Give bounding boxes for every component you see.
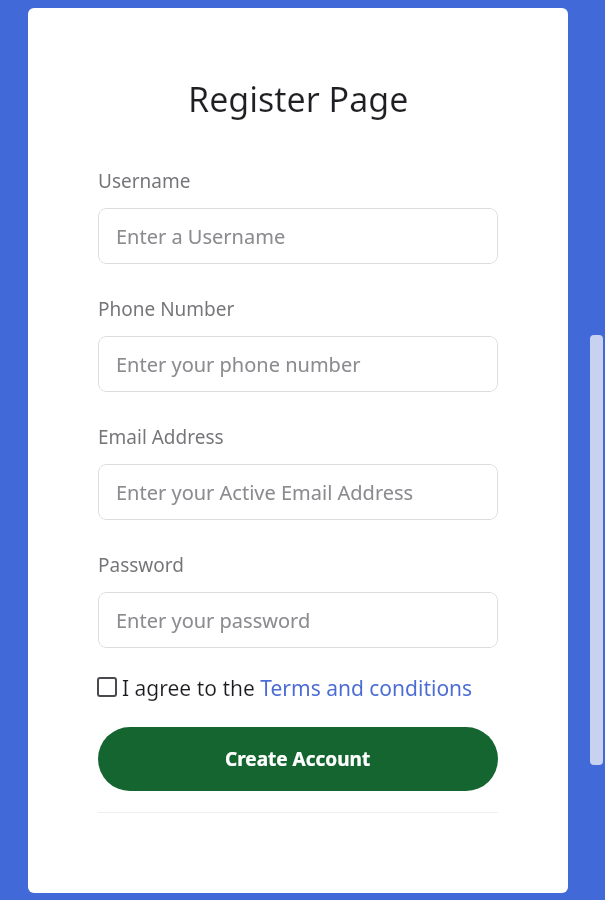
button[interactable]: Enter a Username <box>98 208 498 264</box>
button[interactable]: Enter your phone number <box>98 336 498 392</box>
staticText: Enter your phone number <box>116 351 361 378</box>
staticText: Register Page <box>188 76 409 122</box>
button[interactable]: Create Account <box>98 727 498 791</box>
other: Agree to terms checkbox <box>98 678 116 696</box>
staticText: Enter your Active Email Address <box>116 479 414 506</box>
button[interactable]: Enter your Active Email Address <box>98 464 498 520</box>
staticText: Phone Number <box>98 296 235 322</box>
button[interactable]: Agree to terms checkbox <box>98 674 498 703</box>
staticText: Create Account <box>225 746 371 772</box>
staticText: Enter your password <box>116 607 311 634</box>
staticText: Email Address <box>98 424 224 450</box>
button[interactable]: Enter your password <box>98 592 498 648</box>
staticText: I agree to the Terms and conditions <box>122 674 473 703</box>
staticText: Password <box>98 552 184 578</box>
staticText: Enter a Username <box>116 223 286 250</box>
staticText: Username <box>98 168 191 194</box>
